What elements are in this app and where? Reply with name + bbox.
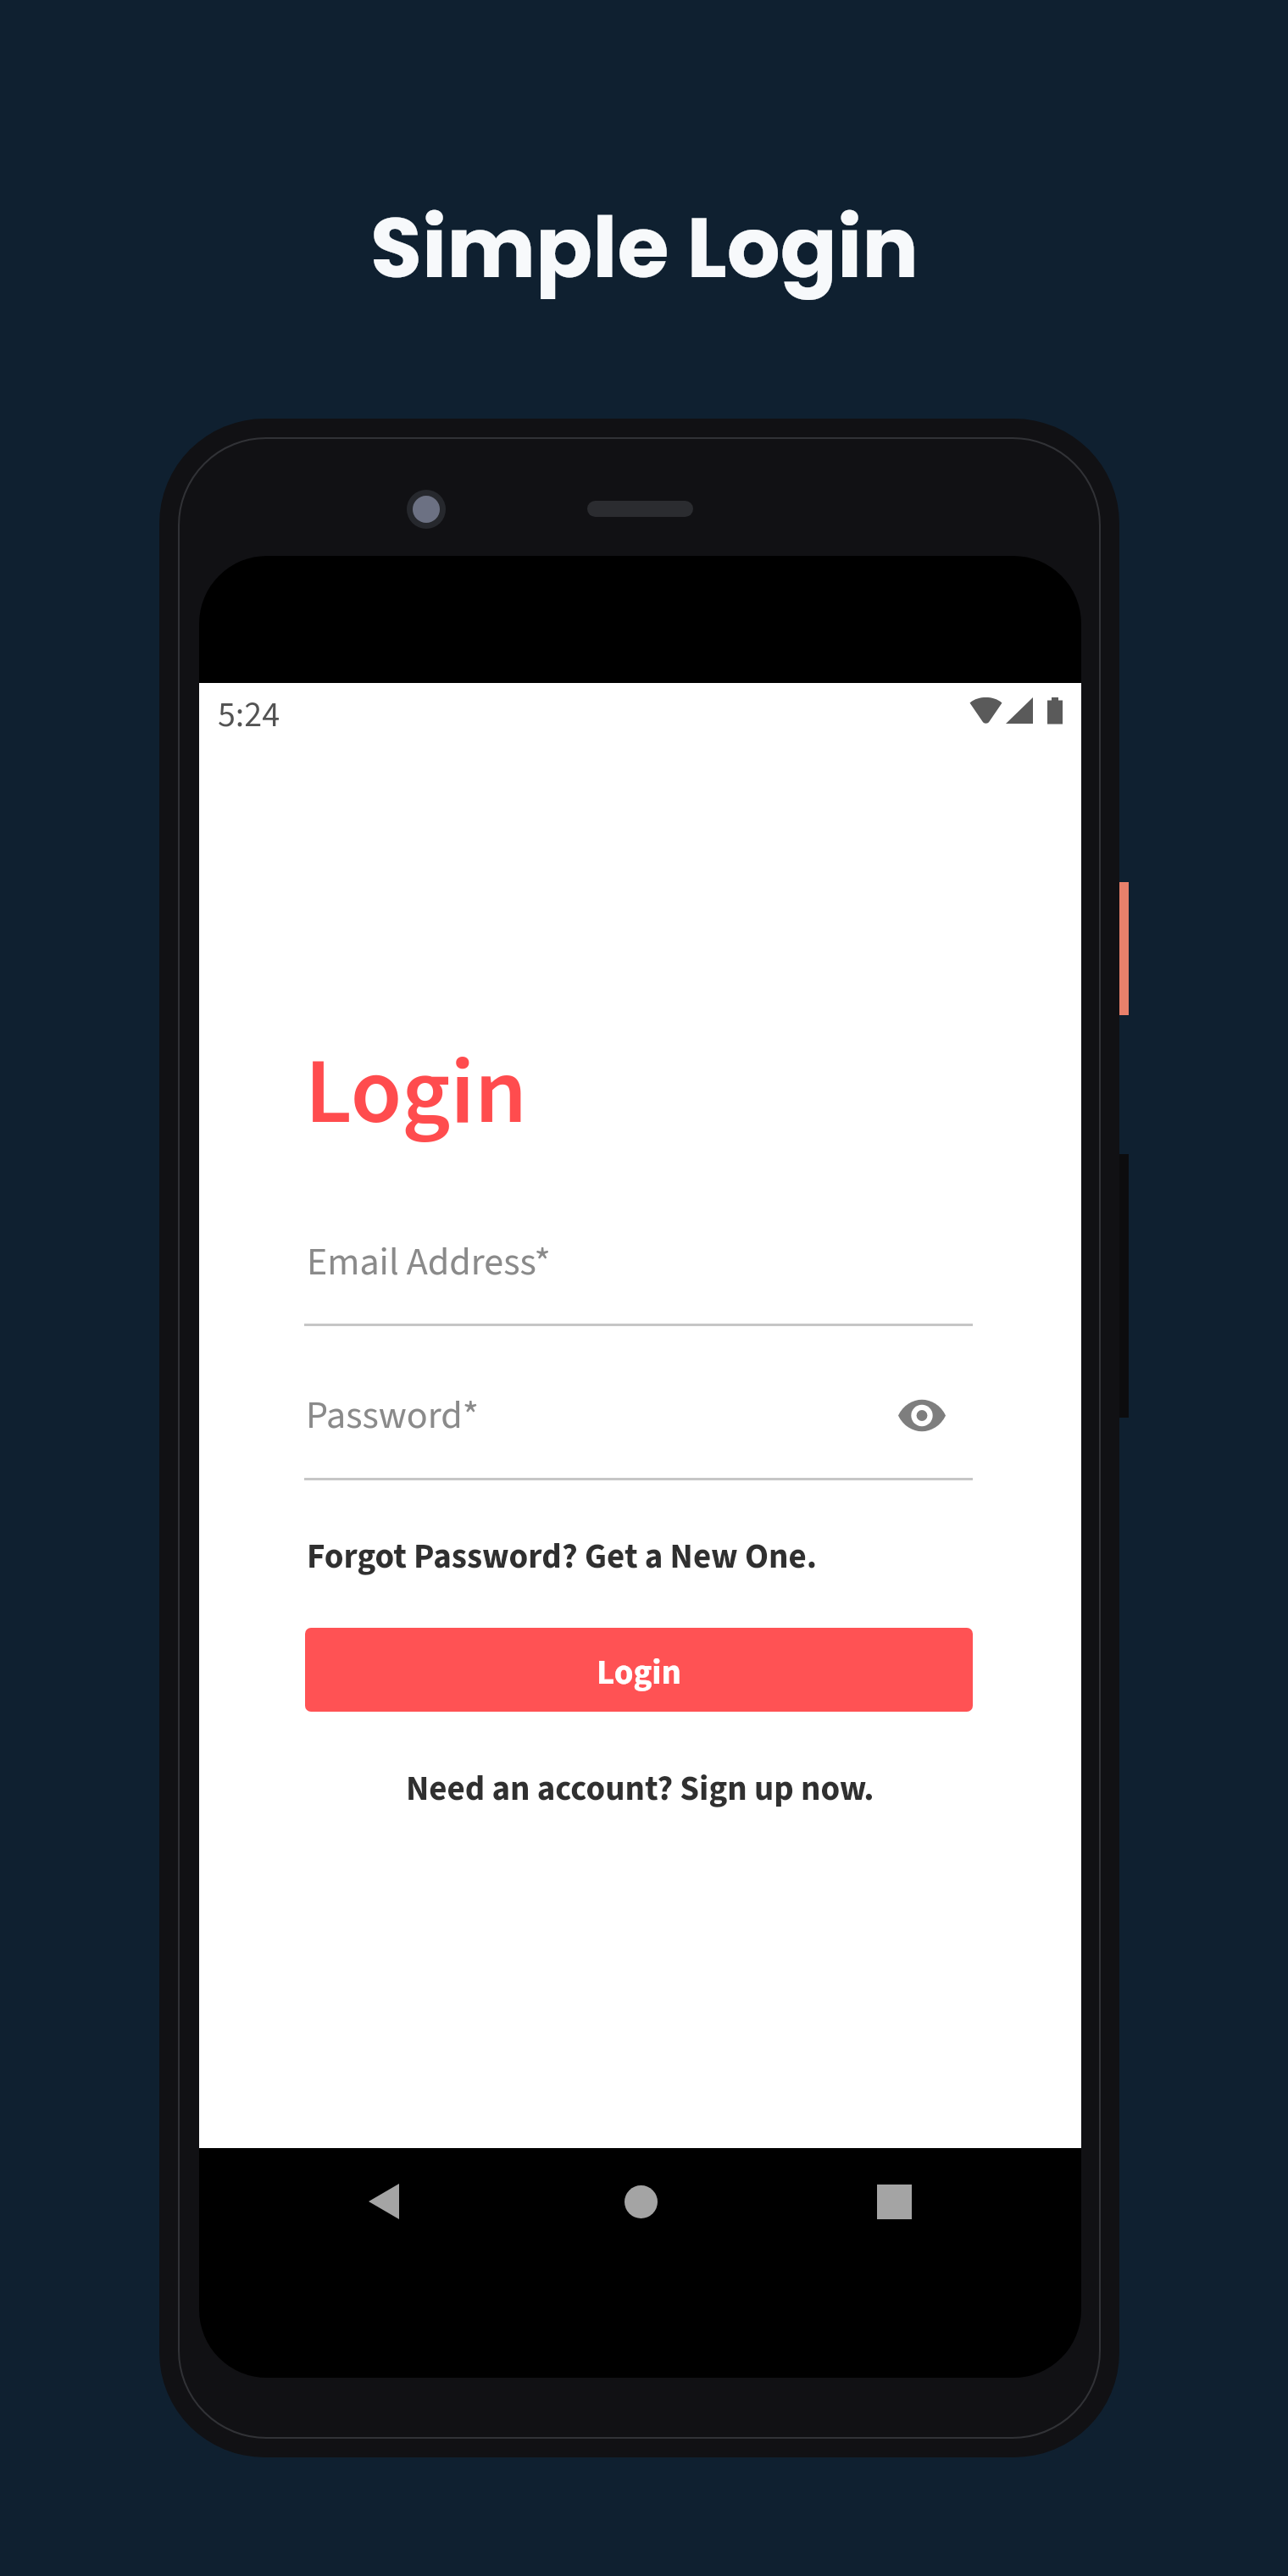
button[interactable]: Forgot Password? Get a New One. — [307, 1523, 883, 1589]
button[interactable]: Need an account? Sign up now. — [402, 1755, 877, 1821]
button[interactable]: Recent apps — [860, 2168, 928, 2235]
staticText: Forgot Password? Get a New One. — [307, 1532, 817, 1581]
staticText: Password* — [306, 1388, 479, 1444]
button[interactable]: Login — [305, 1628, 973, 1712]
staticText: Email Address* — [307, 1235, 551, 1291]
button[interactable]: Show password — [888, 1381, 956, 1449]
staticText: 5:24 — [218, 690, 280, 741]
staticText: Login — [305, 1026, 527, 1159]
staticText: Need an account? Sign up now. — [406, 1764, 874, 1813]
staticText: Login — [597, 1648, 682, 1697]
button[interactable]: Home — [607, 2168, 675, 2235]
staticText: Simple Login — [370, 189, 919, 307]
button[interactable]: Back — [350, 2168, 418, 2235]
